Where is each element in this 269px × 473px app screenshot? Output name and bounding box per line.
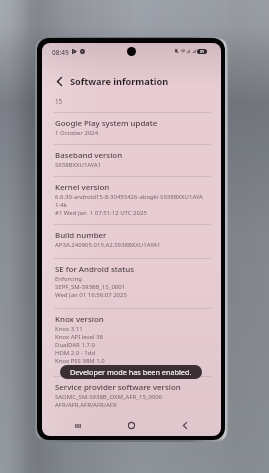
- staticText: SEPF_SM-S938B_15_0001: [55, 283, 126, 291]
- staticText: #1 Wed Jan 1 07:51:12 UTC 2025: [55, 209, 147, 217]
- staticText: 15: [55, 97, 63, 105]
- button[interactable]: [42, 224, 221, 258]
- staticText: AP3A.240905.015.A2.S938BXXU1AYA1: [55, 241, 161, 249]
- staticText: Knox 3.11: [55, 325, 83, 333]
- staticText: S938BXXU1AYA1: [55, 161, 102, 169]
- staticText: Google Play system update: [55, 118, 158, 129]
- button[interactable]: Home: [125, 419, 138, 432]
- staticText: 1-4k: [55, 201, 68, 209]
- staticText: Enforcing: [55, 275, 82, 283]
- staticText: SAOMC_SM-S938B_OXM_AFR_15_0006: [55, 393, 163, 401]
- button[interactable]: Navigate up: [50, 72, 68, 90]
- staticText: Build number: [55, 230, 107, 241]
- staticText: Wed Jan 01 16:56:07 2025: [55, 291, 127, 299]
- staticText: Service provider software version: [55, 382, 181, 393]
- button[interactable]: Back: [178, 419, 191, 432]
- button[interactable]: [42, 112, 221, 144]
- button[interactable]: [42, 176, 221, 224]
- button[interactable]: Recent apps: [71, 419, 84, 432]
- staticText: AFR/AFR,AFR/AFR/AFR: [55, 401, 117, 409]
- staticText: 31: [200, 49, 204, 54]
- button[interactable]: [42, 308, 221, 378]
- staticText: 08:49: [52, 48, 69, 57]
- button[interactable]: [42, 258, 221, 308]
- staticText: SE for Android status: [55, 264, 135, 275]
- staticText: Knox PSS 98M 1.0: [55, 357, 105, 365]
- staticText: 6.6.30-android15-8-30455426-abogki S938B…: [55, 193, 203, 201]
- staticText: Developer mode has been enabled.: [70, 367, 192, 377]
- staticText: Software information: [70, 75, 169, 88]
- button[interactable]: [42, 376, 221, 418]
- staticText: Knox version: [55, 314, 104, 325]
- staticText: Knox API level 38: [55, 333, 103, 341]
- button[interactable]: [42, 144, 221, 176]
- staticText: Kernel version: [55, 182, 110, 193]
- staticText: Baseband version: [55, 150, 123, 161]
- staticText: DualDAR 1.7.0: [55, 341, 95, 349]
- staticText: 1 October 2024: [55, 129, 99, 137]
- staticText: HDM 2.0 - 1dd: [55, 349, 96, 357]
